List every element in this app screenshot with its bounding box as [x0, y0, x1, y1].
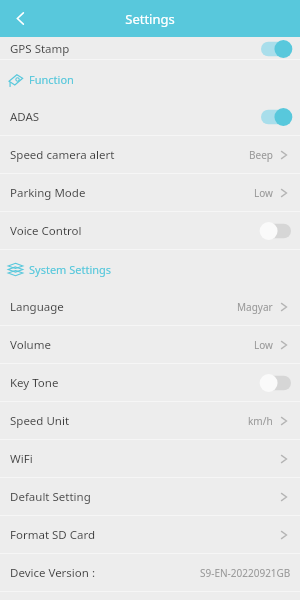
staticText: Parking Mode	[10, 185, 86, 201]
staticText: Volume	[10, 337, 51, 353]
button[interactable]: Key Tone	[0, 364, 300, 402]
staticText: km/h	[248, 414, 273, 428]
staticText: Low	[254, 338, 273, 352]
staticText: S9-EN-20220921GB	[200, 566, 291, 580]
button[interactable]: Parking Mode	[0, 174, 300, 212]
button[interactable]: Device Version :	[0, 554, 300, 592]
staticText: Magyar	[237, 300, 273, 314]
staticText: WiFi	[10, 451, 33, 467]
staticText: GPS Stamp	[10, 41, 70, 57]
button[interactable]: WiFi	[0, 440, 300, 478]
staticText: Function	[29, 72, 74, 87]
button[interactable]: Back	[0, 0, 40, 37]
staticText: System Settings	[29, 262, 112, 277]
button[interactable]: Default Setting	[0, 478, 300, 516]
button[interactable]: Voice Control	[0, 212, 300, 250]
staticText: Speed camera alert	[10, 147, 115, 163]
button[interactable]: Format SD Card	[0, 516, 300, 554]
button[interactable]: Speed camera alert	[0, 136, 300, 174]
staticText: Speed Unit	[10, 413, 70, 429]
staticText: Language	[10, 299, 64, 315]
staticText: Key Tone	[10, 375, 59, 391]
staticText: Settings	[125, 10, 175, 28]
staticText: Format SD Card	[10, 527, 96, 543]
staticText: Default Setting	[10, 489, 91, 505]
button[interactable]: GPS Stamp	[0, 37, 300, 60]
staticText: ADAS	[10, 109, 40, 125]
staticText: Low	[254, 186, 273, 200]
staticText: Voice Control	[10, 223, 82, 239]
button[interactable]: Volume	[0, 326, 300, 364]
staticText: Device Version :	[10, 565, 95, 581]
button[interactable]: Language	[0, 288, 300, 326]
button[interactable]: Speed Unit	[0, 402, 300, 440]
button[interactable]: ADAS	[0, 98, 300, 136]
staticText: Beep	[249, 148, 273, 162]
